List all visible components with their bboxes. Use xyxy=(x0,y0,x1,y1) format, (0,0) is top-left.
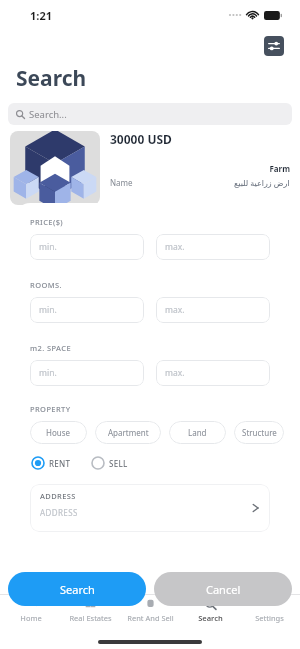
staticText: ROOMS. xyxy=(30,280,62,290)
staticText: Search... xyxy=(29,108,67,121)
button[interactable]: Land xyxy=(169,421,226,444)
button[interactable]: Search xyxy=(181,596,239,625)
button[interactable]: Home xyxy=(2,596,60,625)
staticText: 1:21 xyxy=(30,8,52,23)
staticText: Rent And Sell xyxy=(127,613,174,623)
staticText: min. xyxy=(39,241,57,253)
button[interactable]: Real Estates xyxy=(61,596,119,625)
staticText: Commercial Building xyxy=(0,590,286,601)
button[interactable]: Settings xyxy=(240,596,298,625)
staticText: ارض زراعية للبيع xyxy=(234,177,290,188)
button[interactable]: Search... xyxy=(8,103,292,125)
button[interactable]: Apartment xyxy=(95,421,161,444)
button[interactable]: Filters xyxy=(264,36,284,56)
staticText: max. xyxy=(165,304,185,316)
staticText: min. xyxy=(39,367,57,379)
button[interactable]: Cancel xyxy=(154,572,292,606)
staticText: PROPERTY xyxy=(30,404,71,414)
button[interactable]: Search xyxy=(8,572,146,606)
button[interactable]: RENT xyxy=(30,454,72,472)
staticText: Settings xyxy=(255,613,284,623)
staticText: ADDRESS xyxy=(40,491,76,501)
button[interactable]: Rent And Sell xyxy=(121,596,179,625)
staticText: Search xyxy=(16,64,87,93)
staticText: m2. SPACE xyxy=(30,343,72,353)
button[interactable]: max. xyxy=(156,360,270,386)
staticText: Cancel xyxy=(206,582,241,597)
button[interactable]: min. xyxy=(30,297,144,323)
staticText: House xyxy=(46,427,71,438)
staticText: max. xyxy=(165,367,185,379)
staticText: Search xyxy=(60,582,95,597)
button[interactable]: ADDRESS xyxy=(30,484,270,532)
staticText: SELL xyxy=(109,458,128,469)
staticText: 30000 USD xyxy=(110,131,172,147)
button[interactable]: SELL xyxy=(90,454,129,472)
staticText: RENT xyxy=(49,458,71,469)
staticText: Apartment xyxy=(108,427,149,438)
button[interactable]: max. xyxy=(156,234,270,260)
staticText: max. xyxy=(165,241,185,253)
button[interactable]: max. xyxy=(156,297,270,323)
staticText: ADDRESS xyxy=(40,507,78,518)
staticText: Farm xyxy=(110,163,290,174)
staticText: Name xyxy=(110,177,133,188)
staticText: Land xyxy=(188,427,207,438)
button[interactable]: min. xyxy=(30,234,144,260)
button[interactable]: House xyxy=(30,421,87,444)
staticText: PRICE($) xyxy=(30,217,64,227)
staticText: Home xyxy=(20,613,42,623)
staticText: Structure xyxy=(242,427,277,438)
staticText: Search xyxy=(198,613,223,623)
button[interactable]: min. xyxy=(30,360,144,386)
staticText: Real Estates xyxy=(69,613,112,623)
button[interactable]: Structure xyxy=(234,421,284,444)
staticText: min. xyxy=(39,304,57,316)
